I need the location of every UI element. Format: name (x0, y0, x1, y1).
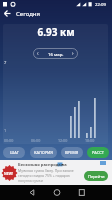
button[interactable]: РАССТ (87, 147, 109, 158)
staticText: ‹ (37, 50, 39, 57)
staticText: ВРЕМЯ (65, 150, 79, 155)
staticText: Мужская сумка Змеу. При заказе (18, 168, 74, 173)
staticText: 18:00 (85, 138, 95, 143)
staticText: 16 мар. (48, 51, 64, 57)
staticText: 22:09 (95, 1, 106, 7)
staticText: NEW! (4, 171, 13, 176)
staticText: 00:00 (4, 138, 14, 143)
staticText: 6.93 км (0, 25, 112, 39)
button[interactable] (2, 8, 13, 19)
staticText: › (72, 50, 74, 57)
button[interactable]: ‹ (33, 48, 78, 59)
button[interactable]: КАЛОРИЯ (30, 147, 57, 158)
button[interactable]: NEW! (0, 160, 112, 185)
button[interactable]: ШАГ (3, 147, 25, 158)
button[interactable]: Перейти (84, 171, 108, 181)
staticText: РАССТ (92, 150, 104, 155)
staticText: 1 (4, 128, 7, 133)
staticText: Сегодня (16, 10, 41, 18)
staticText: 12:00 (58, 138, 68, 143)
staticText: Перейти (88, 174, 105, 179)
staticText: КАЛОРИЯ (34, 150, 53, 155)
staticText: покупка сумки (18, 178, 43, 183)
button[interactable] (76, 187, 87, 198)
staticText: 7 (4, 60, 7, 65)
staticText: Бесхозная распродажа (18, 162, 67, 168)
button[interactable]: ВРЕМЯ (61, 147, 83, 158)
button[interactable] (51, 187, 62, 198)
staticText: ШАГ (10, 150, 19, 155)
staticText: сегодня скидка 75% + подарок (18, 173, 70, 178)
button[interactable] (26, 187, 37, 198)
staticText: 06:00 (31, 138, 41, 143)
